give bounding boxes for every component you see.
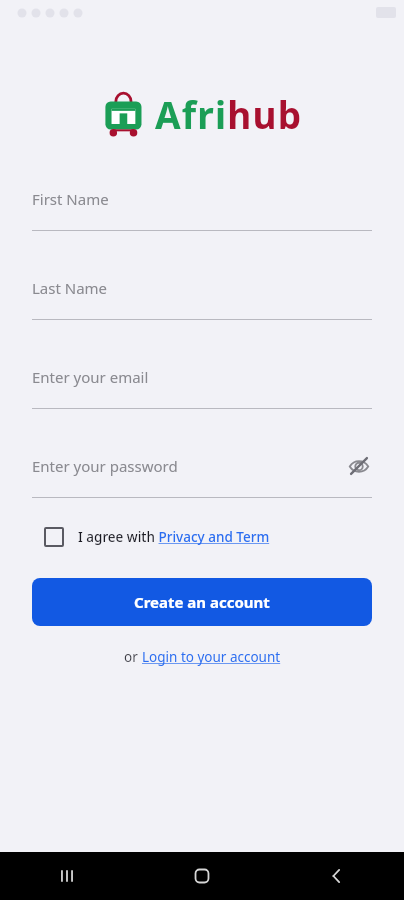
button[interactable]: Show password	[346, 453, 372, 479]
button[interactable]: Last Name	[32, 267, 372, 320]
button[interactable]: Login to your account	[142, 648, 281, 666]
staticText: Enter your password	[32, 456, 178, 476]
button[interactable]: Enter your email	[32, 356, 372, 409]
button[interactable]: Home	[178, 852, 226, 900]
staticText: Last Name	[32, 278, 108, 298]
staticText: Enter your email	[32, 367, 149, 387]
staticText: First Name	[32, 189, 109, 209]
staticText: or	[124, 648, 142, 666]
button[interactable]: Enter your password	[32, 445, 372, 498]
button[interactable]: First Name	[32, 178, 372, 231]
button[interactable]: Create an account	[32, 578, 372, 626]
button[interactable]: Recents	[43, 852, 91, 900]
button[interactable]: Back	[313, 852, 361, 900]
staticText: Create an account	[134, 592, 270, 612]
button[interactable]: I agree with Privacy and Term	[32, 527, 372, 547]
staticText: I agree with Privacy and Term	[78, 528, 270, 546]
staticText: Login to your account	[142, 648, 281, 666]
staticText: Afrihub	[155, 89, 303, 139]
